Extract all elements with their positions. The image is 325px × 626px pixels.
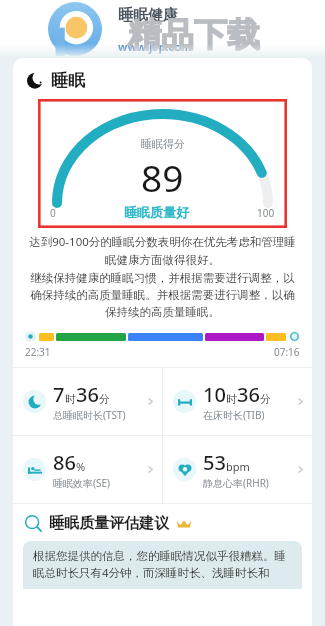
staticText: 时	[65, 392, 76, 406]
staticText: 07:16	[274, 345, 300, 359]
staticText: 睡眠健康	[118, 6, 178, 25]
staticText: 89	[141, 152, 184, 202]
staticText: 在床时长(TIB)	[203, 408, 265, 422]
staticText: bpm	[226, 459, 250, 474]
staticText: 53	[203, 449, 226, 476]
staticText: 睡眠效率(SE)	[53, 476, 111, 490]
staticText: 根据您提供的信息，您的睡眠情况似乎很糟糕。睡眠总时长只有4分钟，而深睡时长、浅睡…	[33, 549, 292, 581]
staticText: 达到90-100分的睡眠分数表明你在优先考虑和管理睡眠健康方面做得很好。	[25, 234, 300, 267]
staticText: 睡眠	[51, 70, 85, 91]
staticText: 静息心率(RHR)	[203, 476, 269, 490]
staticText: 分	[99, 392, 110, 406]
staticText: 86	[53, 449, 76, 476]
staticText: 36	[237, 381, 260, 408]
staticText: %	[76, 459, 86, 474]
staticText: 时	[226, 392, 237, 406]
staticText: 睡眠质量好	[56, 204, 257, 220]
button[interactable]: 7	[13, 368, 162, 435]
other: 睡眠质量评估	[25, 515, 42, 532]
button[interactable]: 10	[163, 368, 312, 435]
staticText: 精品下载	[128, 14, 260, 56]
staticText: 分	[260, 392, 271, 406]
staticText: 10	[203, 381, 226, 408]
staticText: 继续保持健康的睡眠习惯，并根据需要进行调整，以确保持续的高质量睡眠。并根据需要进…	[25, 271, 300, 319]
button[interactable]: 53	[163, 436, 312, 503]
button[interactable]: 86	[13, 436, 162, 503]
staticText: 7	[53, 381, 65, 408]
staticText: 22:31	[25, 345, 51, 359]
staticText: www.j9p.com	[118, 39, 192, 54]
staticText: 36	[76, 381, 99, 408]
staticText: 总睡眠时长(TST)	[53, 408, 126, 422]
staticText: 睡眠得分	[141, 137, 185, 151]
staticText: 0	[50, 206, 56, 220]
staticText: 睡眠质量评估建议	[49, 514, 169, 533]
staticText: 100	[257, 206, 275, 220]
